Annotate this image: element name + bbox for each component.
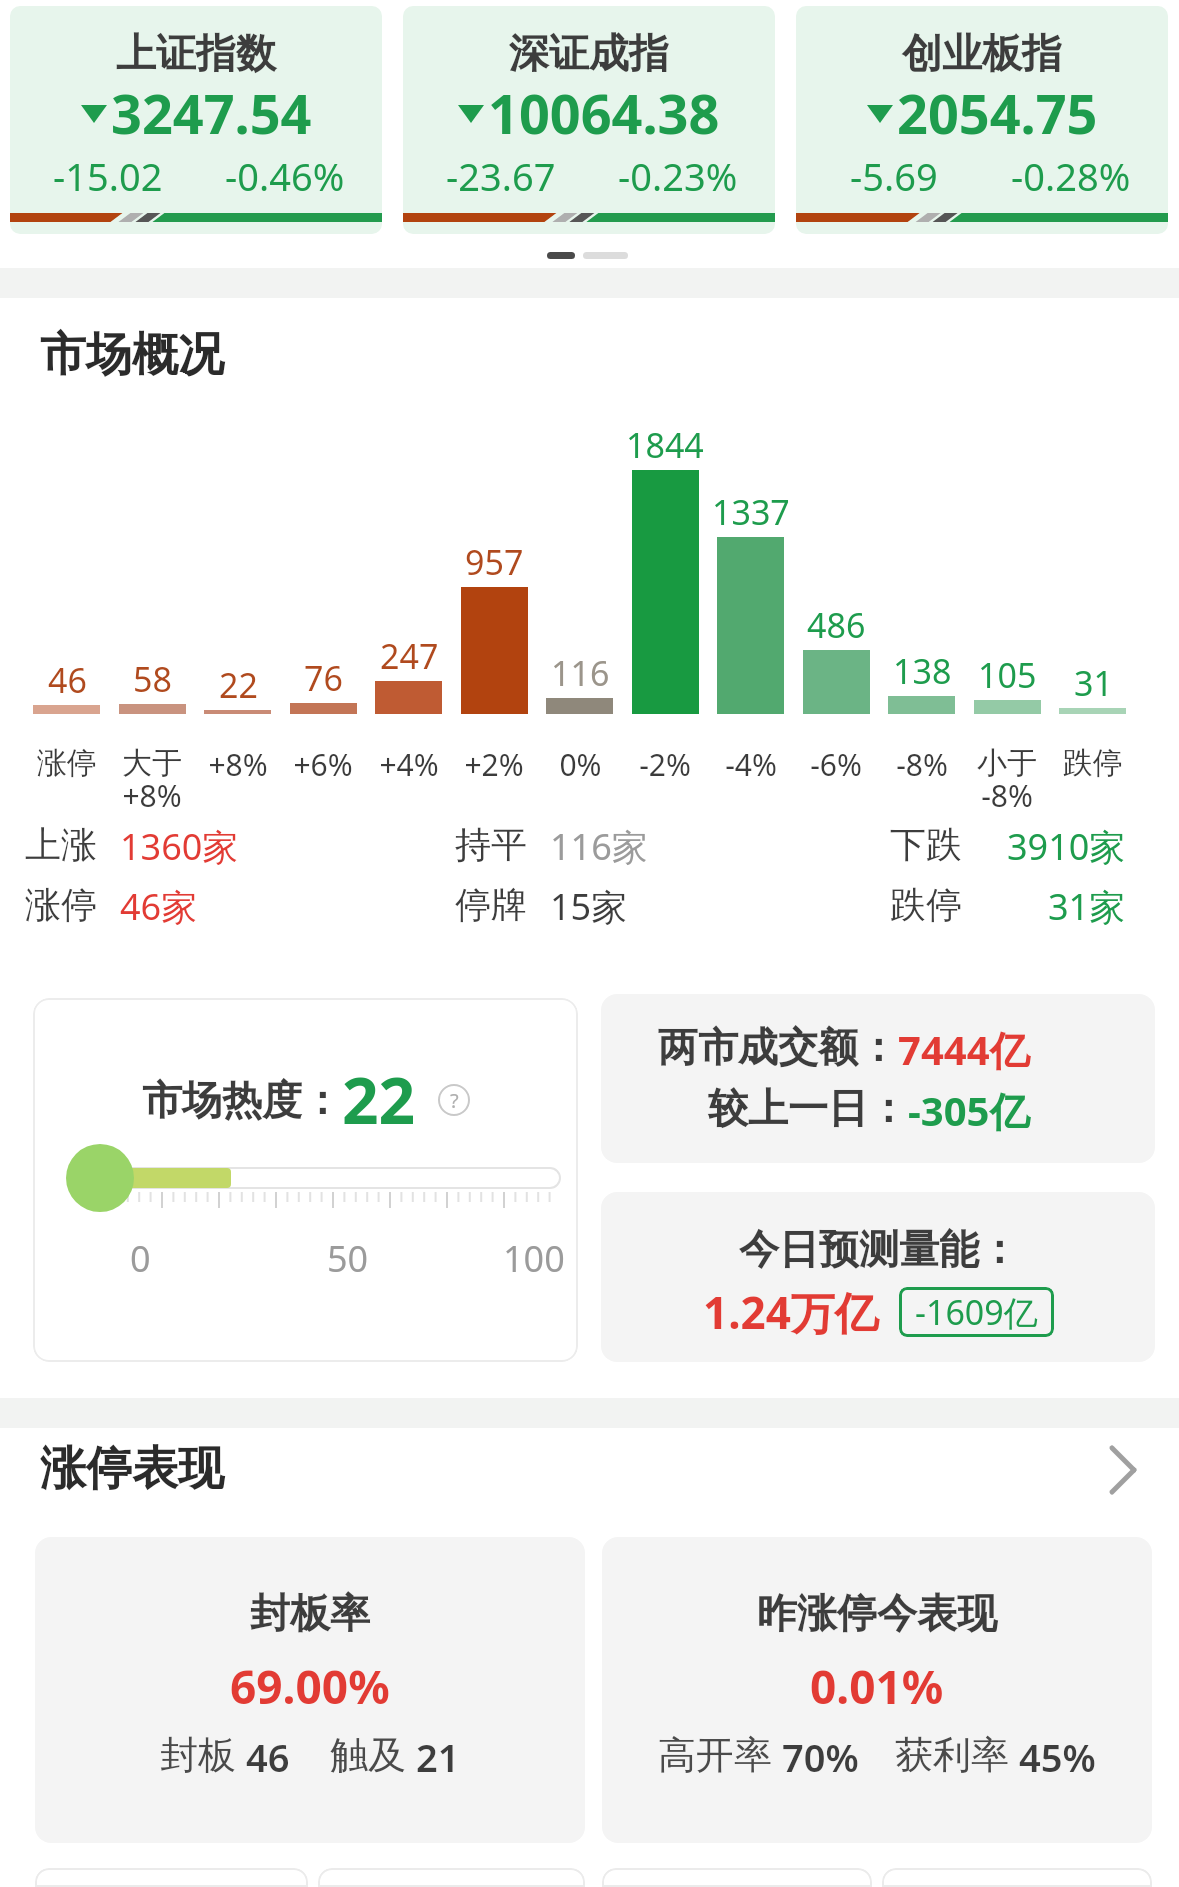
button[interactable] [1108,1446,1138,1494]
staticText: 46 [246,1731,290,1783]
staticText: 两市成交额： [658,1022,898,1072]
staticText: 获利率 [895,1731,1009,1779]
staticText: 1360家 [120,822,239,871]
staticText: 1337 [712,489,790,535]
staticText: 15家 [550,882,628,931]
staticText: 957 [465,539,524,585]
staticText: 触及 [330,1731,406,1779]
button[interactable]: 上证指数 [10,6,382,234]
staticText: 1.24万亿 [703,1282,879,1342]
staticText: ? [450,1087,459,1114]
staticText: 22 [342,1056,416,1143]
staticText: 50 [327,1234,369,1283]
staticText: 31 [1074,660,1113,706]
staticText: 下跌 [890,822,962,867]
button[interactable]: 两市成交额： [601,994,1155,1163]
staticText: 46家 [120,882,198,931]
staticText: -0.28% [1011,150,1131,202]
staticText: -305亿 [908,1083,1030,1138]
staticText: 小于 -8% [977,744,1037,816]
staticText: +2% [464,744,524,785]
staticText: -15.02 [53,150,163,202]
button[interactable]: 昨涨停今表现 [602,1537,1152,1843]
staticText: -5.69 [850,150,938,202]
staticText: 3247.54 [111,76,312,150]
staticText: 0% [559,744,602,785]
staticText: 58 [133,656,172,702]
staticText: 247 [380,633,439,679]
staticText: 0 [130,1234,151,1283]
staticText: -8% [896,744,948,785]
staticText: 7444亿 [898,1022,1030,1077]
staticText: 今日预测量能： [739,1224,1019,1274]
staticText: 高开率 [658,1731,772,1779]
staticText: 21 [416,1731,460,1783]
staticText: 69.00% [230,1655,390,1718]
staticText: 1844 [626,422,704,468]
staticText: -0.46% [225,150,345,202]
staticText: 105 [978,652,1037,698]
staticText: 100 [503,1234,565,1283]
staticText: +6% [293,744,353,785]
staticText: 上证指数 [116,28,276,78]
staticText: 70% [782,1731,859,1783]
staticText: 创业板指 [902,28,1062,78]
button[interactable]: 今日预测量能： [601,1192,1155,1362]
staticText: -4% [725,744,777,785]
staticText: 持平 [455,822,527,867]
staticText: -6% [810,744,862,785]
staticText: -1609亿 [915,1289,1038,1335]
staticText: 涨停表现 [40,1440,224,1498]
staticText: 深证成指 [509,28,669,78]
button[interactable]: 市场热度： [33,998,578,1362]
staticText: 市场热度： [142,1075,342,1125]
button[interactable]: 深证成指 [403,6,775,234]
staticText: 2054.75 [897,76,1098,150]
staticText: 封板率 [250,1588,370,1638]
staticText: 封板 [160,1731,236,1779]
staticText: 涨停 [25,882,97,927]
staticText: 46 [48,657,87,703]
staticText: 涨停 [37,744,97,782]
staticText: 116家 [550,822,648,871]
staticText: 上涨 [25,822,97,867]
staticText: 22 [219,662,258,708]
staticText: 45% [1019,1731,1096,1783]
staticText: 31家 [1048,882,1126,931]
staticText: -2% [639,744,691,785]
staticText: 3910家 [1007,822,1126,871]
staticText: -0.23% [618,150,738,202]
button[interactable]: 创业板指 [796,6,1168,234]
staticText: 市场概况 [40,326,224,384]
staticText: +8% [208,744,268,785]
button[interactable]: 封板率 [35,1537,585,1843]
staticText: 停牌 [455,882,527,927]
staticText: 昨涨停今表现 [757,1588,997,1638]
staticText: 大于 +8% [122,744,182,816]
staticText: 116 [551,650,610,696]
staticText: 跌停 [1063,744,1123,782]
staticText: 138 [893,648,952,694]
staticText: +4% [379,744,439,785]
staticText: 486 [807,602,866,648]
staticText: 76 [304,655,343,701]
staticText: 10064.38 [488,76,720,150]
staticText: 较上一日： [708,1083,908,1133]
staticText: 跌停 [890,882,962,927]
staticText: -23.67 [446,150,556,202]
staticText: 0.01% [810,1655,944,1718]
